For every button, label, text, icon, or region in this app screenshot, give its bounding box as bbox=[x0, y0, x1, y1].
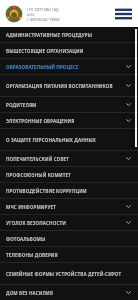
staticText: ГУО "ДЕТСКИЙ САД bbox=[27, 7, 59, 12]
staticText: Г. ВИТЕБСКА "УМКА" bbox=[27, 17, 61, 22]
button[interactable]: УГОЛОК БЕЗОПАСНОСТИ bbox=[0, 215, 138, 230]
staticText: №56 bbox=[27, 12, 35, 17]
button[interactable]: ПРОФСОЮЗНЫЙ КОМИТЕТ bbox=[0, 167, 138, 182]
button[interactable]: МЧС ИНФОРМИРУЕТ bbox=[0, 199, 138, 214]
staticText: АДМИНИСТРАТИВНЫЕ ПРОЦЕДУРЫ bbox=[6, 32, 125, 38]
button[interactable]: ОБРАЗОВАТЕЛЬНЫЙ ПРОЦЕСС bbox=[0, 59, 138, 74]
staticText: ПРОТИВОДЕЙСТВИЕ КОРРУПЦИИ bbox=[6, 188, 125, 194]
staticText: ПРОФСОЮЗНЫЙ КОМИТЕТ bbox=[6, 172, 125, 178]
button[interactable]: ГУО "ДЕТСКИЙ САД bbox=[5, 5, 115, 23]
staticText: ВЫШЕСТОЯЩИЕ ОРГАНИЗАЦИИ bbox=[6, 48, 125, 54]
staticText: ЭЛЕКТРОННЫЕ ОБРАЩЕНИЯ bbox=[6, 118, 125, 124]
button[interactable]: РОДИТЕЛЯМ bbox=[0, 97, 138, 112]
button[interactable]: ПРОТИВОДЕЙСТВИЕ КОРРУПЦИИ bbox=[0, 183, 138, 198]
staticText: СЕМЕЙНЫЕ ФОРМЫ УСТРОЙСТВА ДЕТЕЙ-СИРОТ bbox=[6, 271, 125, 277]
staticText: ФОТОАЛЬБОМЫ bbox=[6, 236, 125, 242]
button[interactable]: ФОТОАЛЬБОМЫ bbox=[0, 231, 138, 246]
button[interactable]: Menu bbox=[115, 7, 132, 21]
button[interactable]: СЕМЕЙНЫЕ ФОРМЫ УСТРОЙСТВА ДЕТЕЙ-СИРОТ bbox=[0, 263, 138, 284]
staticText: УГОЛОК БЕЗОПАСНОСТИ bbox=[6, 220, 125, 226]
staticText: ДОМ БЕЗ НАСИЛИЯ bbox=[6, 290, 125, 296]
button[interactable]: АДМИНИСТРАТИВНЫЕ ПРОЦЕДУРЫ bbox=[0, 27, 138, 42]
staticText: ОРГАНИЗАЦИЯ ПИТАНИЯ ВОСПИТАННИКОВ bbox=[6, 83, 125, 89]
staticText: МЧС ИНФОРМИРУЕТ bbox=[6, 204, 125, 210]
staticText: О ЗАЩИТЕ ПЕРСОНАЛЬНЫХ ДАННЫХ bbox=[6, 137, 125, 143]
button[interactable]: ВЫШЕСТОЯЩИЕ ОРГАНИЗАЦИИ bbox=[0, 43, 138, 58]
staticText: РОДИТЕЛЯМ bbox=[6, 102, 125, 108]
staticText: ТЕЛЕФОНЫ ДОВЕРИЯ bbox=[6, 252, 125, 258]
button[interactable]: ОРГАНИЗАЦИЯ ПИТАНИЯ ВОСПИТАННИКОВ bbox=[0, 75, 138, 96]
button[interactable]: О ЗАЩИТЕ ПЕРСОНАЛЬНЫХ ДАННЫХ bbox=[0, 129, 138, 150]
staticText: ПОПЕЧИТЕЛЬСКИЙ СОВЕТ bbox=[6, 156, 125, 162]
button[interactable]: ЭЛЕКТРОННЫЕ ОБРАЩЕНИЯ bbox=[0, 113, 138, 128]
button[interactable]: ТЕЛЕФОНЫ ДОВЕРИЯ bbox=[0, 247, 138, 262]
staticText: ОБРАЗОВАТЕЛЬНЫЙ ПРОЦЕСС bbox=[6, 64, 125, 70]
button[interactable]: ПОПЕЧИТЕЛЬСКИЙ СОВЕТ bbox=[0, 151, 138, 166]
button[interactable]: ДОМ БЕЗ НАСИЛИЯ bbox=[0, 285, 138, 300]
